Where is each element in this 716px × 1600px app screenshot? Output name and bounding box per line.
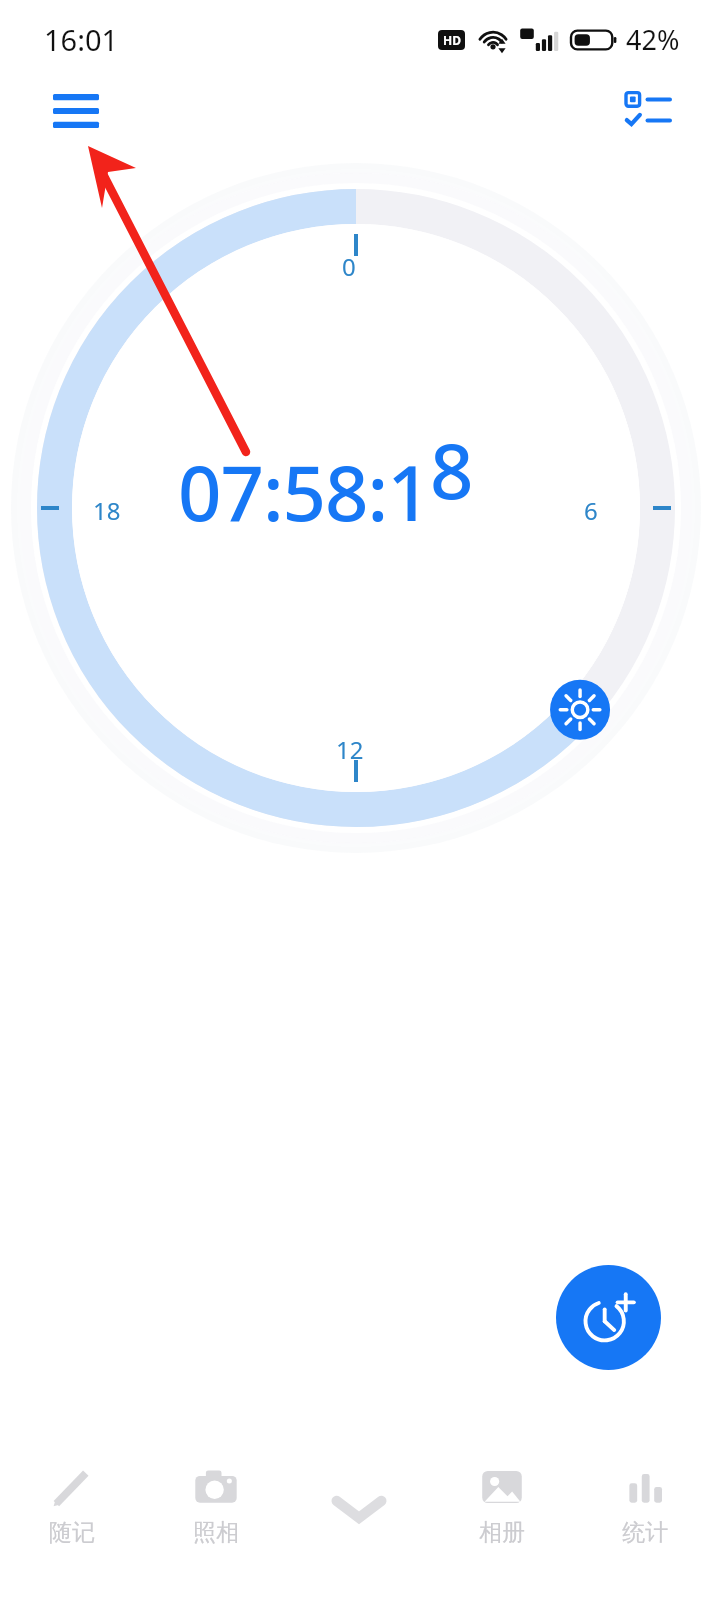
staticText: 16:01 [44,20,119,59]
staticText: 照相 [193,1518,239,1547]
staticText: 统计 [622,1518,668,1547]
button[interactable]: 相册 [430,1450,573,1580]
staticText: 12 [336,733,364,766]
button[interactable]: Collapse [287,1450,430,1580]
button[interactable]: 统计 [573,1450,716,1580]
staticText: 6 [584,494,598,527]
button[interactable]: 随记 [0,1450,144,1580]
staticText: 8 [430,418,474,522]
staticText: 相册 [479,1518,525,1547]
button[interactable]: 照相 [144,1450,287,1580]
staticText: 42% [626,21,680,58]
button[interactable]: Task list [608,78,688,144]
staticText: HD [443,32,461,48]
staticText: 18 [93,494,121,527]
staticText: 0 [342,250,356,283]
button[interactable]: Menu [34,78,118,144]
staticText: 随记 [49,1518,95,1547]
button[interactable]: Add timer [556,1265,661,1370]
staticText: 07:58:1 [178,440,430,544]
